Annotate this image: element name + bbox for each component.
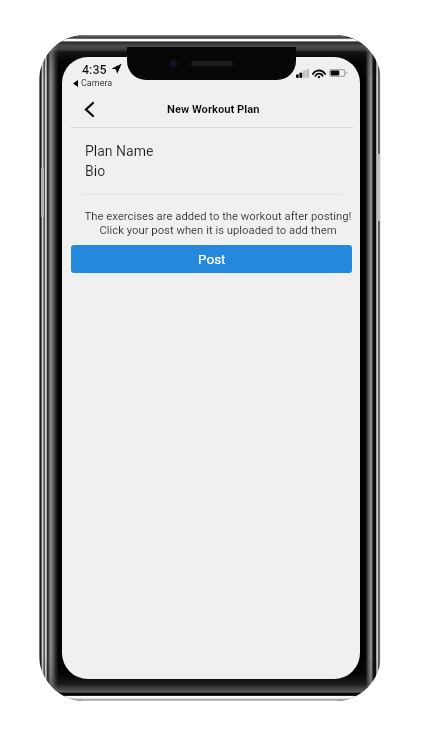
staticText: 4:35: [82, 62, 107, 77]
button[interactable]: Post: [71, 245, 352, 273]
staticText: Plan Name: [85, 143, 154, 159]
staticText: Post: [198, 251, 226, 267]
staticText: New Workout Plan: [167, 103, 260, 116]
staticText: The exercises are added to the workout a…: [69, 210, 360, 236]
button[interactable]: Back: [74, 95, 104, 123]
staticText: Bio: [85, 163, 106, 179]
staticText: Camera: [81, 78, 113, 89]
